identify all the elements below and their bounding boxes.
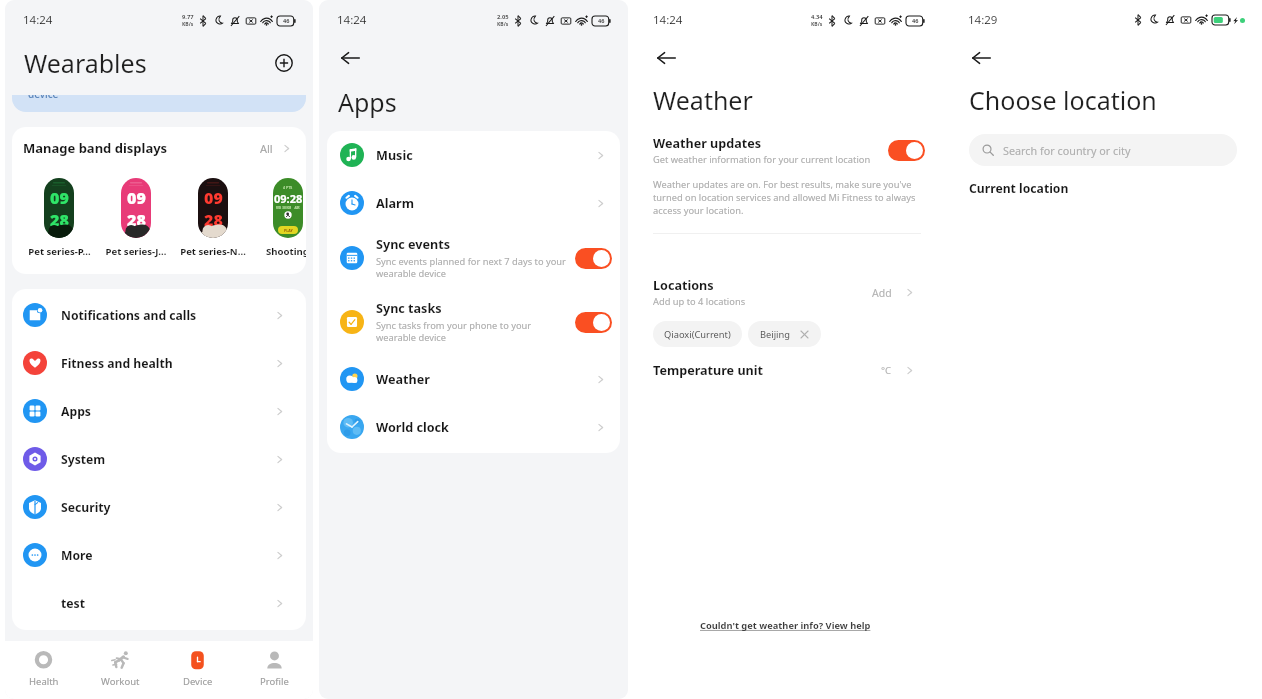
button[interactable]: Back <box>962 42 1000 74</box>
button[interactable]: Weather updates <box>653 135 925 166</box>
button[interactable]: World clock <box>327 403 620 451</box>
staticText: Add up to 4 locations <box>653 295 746 308</box>
button[interactable]: Music <box>327 131 620 179</box>
button[interactable]: Toggle <box>575 312 612 333</box>
button[interactable]: Workout <box>82 641 159 699</box>
staticText: Apps <box>61 403 273 420</box>
staticText: Security <box>61 499 273 516</box>
button[interactable]: Sync tasks <box>327 289 620 355</box>
button[interactable]: Fitness and health <box>12 339 306 387</box>
staticText: Music <box>376 147 413 164</box>
staticText: Profile <box>260 675 289 688</box>
button[interactable]: Sync events <box>327 227 620 289</box>
button[interactable]: Apps <box>12 387 306 435</box>
staticText: Sync tasks from your phone to your weara… <box>376 319 567 344</box>
button[interactable]: Pet series-P… <box>44 178 74 238</box>
staticText: 09 <box>204 187 223 209</box>
staticText: 14:24 <box>23 12 53 28</box>
staticText: Weather <box>376 371 430 388</box>
button[interactable]: Pet series-J… <box>121 178 151 238</box>
button[interactable]: Security <box>12 483 306 531</box>
staticText: 46 <box>912 17 919 25</box>
button[interactable]: Profile <box>236 641 313 699</box>
staticText: 09 <box>127 187 146 209</box>
staticText: Temperature unit <box>653 362 881 379</box>
staticText: test <box>61 595 273 612</box>
button[interactable]: Beijing <box>748 321 821 347</box>
staticText: 14:29 <box>968 12 998 28</box>
staticText: Weather <box>653 83 753 117</box>
staticText: Alarm <box>376 195 414 212</box>
staticText: 46 <box>283 17 290 25</box>
staticText: KB/s <box>497 21 509 28</box>
staticText: 14:24 <box>337 12 367 28</box>
staticText: Weather updates are on. For best results… <box>653 178 916 217</box>
staticText: Sync events planned for next 7 days to y… <box>376 255 567 280</box>
staticText: Weather updates <box>653 135 762 152</box>
button[interactable]: Health <box>5 641 82 699</box>
staticText: 09:28 <box>274 191 303 206</box>
button[interactable]: Pet series-N… <box>198 178 228 238</box>
staticText: Apps <box>338 85 397 119</box>
button[interactable]: Toggle <box>575 248 612 269</box>
staticText: Wearables <box>24 46 147 80</box>
staticText: Health <box>29 675 59 688</box>
staticText: Shooting <box>266 245 306 258</box>
staticText: Search for country or city <box>1003 143 1131 158</box>
button[interactable]: System <box>12 435 306 483</box>
staticText: Couldn't get weather info? View help <box>700 619 871 632</box>
staticText: Pet series-P… <box>28 245 91 258</box>
staticText: More <box>61 547 273 564</box>
staticText: 2.05 <box>497 13 509 21</box>
button[interactable]: Locations <box>653 277 916 308</box>
staticText: 9.77 <box>182 13 194 21</box>
staticText: Sync events <box>376 236 451 253</box>
staticText: System <box>61 451 273 468</box>
staticText: Notifications and calls <box>61 307 273 324</box>
staticText: Manage band displays <box>23 139 168 157</box>
staticText: Pet series-N… <box>180 245 246 258</box>
staticText: 4.34 <box>811 13 823 21</box>
staticText: Beijing <box>760 328 790 341</box>
button[interactable]: More <box>12 531 306 579</box>
staticText: Workout <box>101 675 140 688</box>
staticText: 28 <box>50 209 69 231</box>
button[interactable]: Back <box>647 42 685 74</box>
staticText: device <box>28 95 59 101</box>
staticText: 4 PTS <box>283 185 293 190</box>
button[interactable]: Toggle <box>888 140 925 161</box>
staticText: Current location <box>969 180 1069 197</box>
button[interactable]: Couldn't get weather info? View help <box>700 619 871 632</box>
button[interactable]: Alarm <box>327 179 620 227</box>
staticText: RSS 38 KM AIR <box>276 206 300 210</box>
button[interactable]: Add device <box>269 48 299 78</box>
staticText: °C <box>881 364 892 377</box>
button[interactable]: Search for country or city <box>969 134 1237 166</box>
staticText: Choose location <box>969 83 1157 117</box>
staticText: Locations <box>653 277 714 294</box>
staticText: 46 <box>598 17 605 25</box>
button[interactable]: Back <box>331 42 369 74</box>
staticText: Add <box>872 286 892 300</box>
staticText: Fitness and health <box>61 355 273 372</box>
staticText: 14:24 <box>653 12 683 28</box>
button[interactable]: All <box>260 141 293 156</box>
button[interactable]: Qiaoxi(Current) <box>653 321 742 347</box>
staticText: KB/s <box>182 21 194 28</box>
staticText: Get weather information for your current… <box>653 153 871 166</box>
button[interactable]: Shooting <box>273 178 303 238</box>
staticText: Sync tasks <box>376 300 442 317</box>
staticText: 28 <box>204 209 223 231</box>
button[interactable]: test <box>12 579 306 627</box>
staticText: 09 <box>50 187 69 209</box>
staticText: Qiaoxi(Current) <box>664 328 731 341</box>
staticText: 28 <box>127 209 146 231</box>
button[interactable]: Weather <box>327 355 620 403</box>
button[interactable]: Notifications and calls <box>12 291 306 339</box>
staticText: World clock <box>376 419 449 436</box>
staticText: All <box>260 141 273 156</box>
button[interactable]: Temperature unit <box>653 362 916 379</box>
button[interactable]: Device <box>159 641 236 699</box>
staticText: KB/s <box>811 21 823 28</box>
staticText: Pet series-J… <box>105 245 167 258</box>
